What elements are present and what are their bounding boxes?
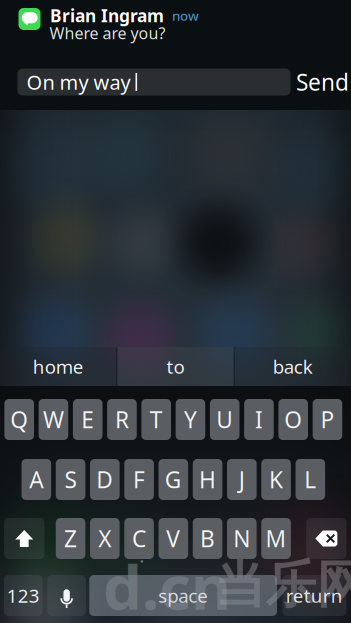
- button[interactable]: Space: [89, 575, 277, 616]
- staticText: back: [273, 354, 313, 379]
- staticText: N: [233, 523, 250, 553]
- button[interactable]: V: [158, 518, 188, 559]
- staticText: now: [172, 7, 199, 24]
- button[interactable]: F: [124, 459, 154, 500]
- staticText: I: [255, 404, 263, 434]
- button[interactable]: E: [73, 399, 102, 440]
- staticText: Z: [64, 523, 77, 553]
- staticText: G: [165, 464, 182, 494]
- staticText: R: [115, 404, 129, 434]
- button[interactable]: M: [261, 518, 291, 559]
- button[interactable]: Q: [4, 399, 34, 440]
- staticText: S: [65, 464, 77, 494]
- staticText: On my way: [26, 69, 130, 95]
- button[interactable]: S: [56, 459, 85, 500]
- staticText: F: [133, 464, 145, 494]
- staticText: 123: [7, 583, 40, 608]
- staticText: space: [158, 583, 208, 608]
- button[interactable]: Y: [176, 399, 205, 440]
- button[interactable]: Numbers: [4, 575, 42, 616]
- button[interactable]: Z: [56, 518, 85, 559]
- staticText: W: [43, 404, 64, 434]
- staticText: Y: [184, 404, 197, 434]
- staticText: 当乐网: [214, 554, 351, 616]
- staticText: L: [304, 464, 316, 494]
- staticText: E: [81, 404, 94, 434]
- staticText: C: [132, 523, 146, 553]
- button[interactable]: B: [193, 518, 222, 559]
- staticText: H: [199, 464, 216, 494]
- staticText: D: [96, 464, 113, 494]
- staticText: Where are you?: [49, 22, 165, 44]
- button[interactable]: T: [141, 399, 171, 440]
- button[interactable]: I: [244, 399, 274, 440]
- button[interactable]: Shift: [4, 518, 44, 559]
- button[interactable]: back: [235, 347, 351, 386]
- staticText: A: [29, 464, 43, 494]
- staticText: J: [239, 464, 245, 494]
- staticText: B: [200, 523, 215, 553]
- button[interactable]: W: [39, 399, 68, 440]
- button[interactable]: Return: [282, 575, 346, 616]
- button[interactable]: L: [295, 459, 325, 500]
- button[interactable]: home: [0, 347, 116, 386]
- staticText: K: [269, 464, 283, 494]
- button[interactable]: O: [278, 399, 308, 440]
- button[interactable]: A: [21, 459, 51, 500]
- staticText: T: [150, 404, 163, 434]
- button[interactable]: D: [90, 459, 120, 500]
- button[interactable]: R: [107, 399, 137, 440]
- staticText: O: [284, 404, 302, 434]
- button[interactable]: K: [261, 459, 291, 500]
- button[interactable]: Dictation: [47, 575, 86, 616]
- staticText: V: [166, 523, 180, 553]
- button[interactable]: C: [124, 518, 154, 559]
- button[interactable]: G: [158, 459, 188, 500]
- button[interactable]: H: [193, 459, 222, 500]
- staticText: to: [166, 354, 184, 379]
- button[interactable]: U: [210, 399, 239, 440]
- staticText: home: [33, 354, 84, 379]
- button[interactable]: N: [227, 518, 257, 559]
- button[interactable]: Send: [293, 67, 351, 97]
- staticText: M: [266, 523, 287, 553]
- staticText: Q: [10, 404, 28, 434]
- staticText: P: [320, 404, 334, 434]
- button[interactable]: J: [227, 459, 257, 500]
- staticText: U: [216, 404, 233, 434]
- staticText: Send: [296, 67, 349, 97]
- staticText: d.cn: [103, 545, 231, 623]
- button[interactable]: X: [90, 518, 120, 559]
- button[interactable]: to: [117, 347, 234, 386]
- staticText: return: [286, 583, 343, 608]
- staticText: Brian Ingram: [50, 4, 164, 27]
- button[interactable]: P: [313, 399, 342, 440]
- staticText: X: [98, 523, 111, 553]
- button[interactable]: Delete: [306, 518, 346, 559]
